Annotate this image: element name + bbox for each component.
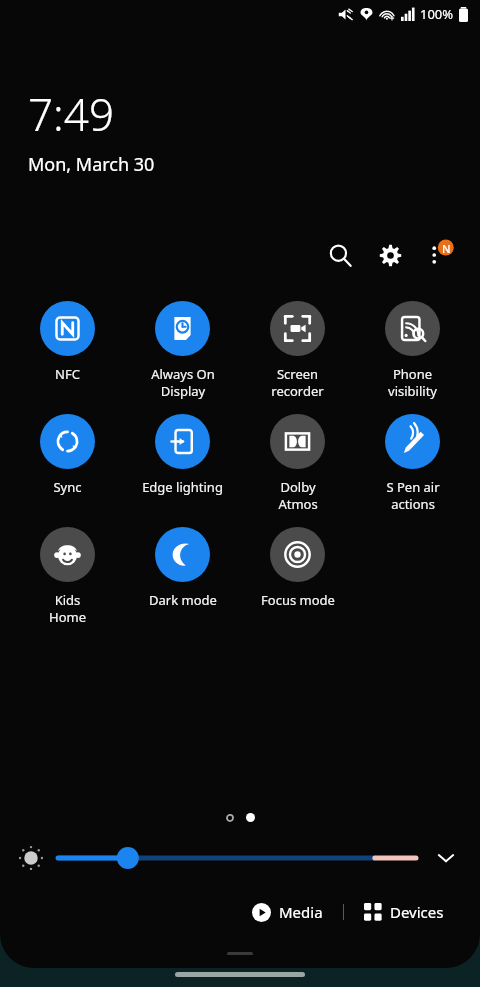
button[interactable]: Dolby Atmos bbox=[240, 414, 355, 513]
staticText: Kids Home bbox=[49, 591, 86, 626]
staticText: Screen recorder bbox=[271, 365, 324, 400]
staticText: Edge lighting bbox=[142, 478, 223, 496]
staticText: 7:49 bbox=[28, 84, 115, 144]
button[interactable]: Brightness bbox=[58, 843, 416, 873]
button[interactable]: Sync bbox=[10, 414, 125, 496]
button[interactable]: Media bbox=[244, 896, 331, 928]
staticText: S Pen air actions bbox=[386, 478, 440, 513]
button[interactable]: Dark mode bbox=[125, 527, 240, 609]
button[interactable]: Kids Home bbox=[10, 527, 125, 626]
staticText: Phone visibility bbox=[388, 365, 437, 400]
staticText: Dark mode bbox=[149, 591, 217, 609]
staticText: Sync bbox=[53, 478, 82, 496]
button[interactable]: Expand brightness settings bbox=[426, 838, 466, 878]
staticText: 100% bbox=[420, 5, 454, 23]
button[interactable]: S Pen air actions bbox=[355, 414, 470, 513]
button[interactable]: Edge lighting bbox=[125, 414, 240, 496]
staticText: Mon, March 30 bbox=[28, 152, 155, 177]
button[interactable]: More options bbox=[416, 231, 464, 279]
button[interactable]: Phone visibility bbox=[355, 301, 470, 400]
button[interactable]: Focus mode bbox=[240, 527, 355, 609]
button[interactable]: Settings bbox=[366, 231, 414, 279]
staticText: N bbox=[442, 241, 451, 256]
button[interactable]: Always On Display bbox=[125, 301, 240, 400]
staticText: Devices bbox=[390, 902, 444, 922]
staticText: Focus mode bbox=[261, 591, 335, 609]
button[interactable]: NFC bbox=[10, 301, 125, 383]
staticText: Dolby Atmos bbox=[278, 478, 318, 513]
button[interactable]: Screen recorder bbox=[240, 301, 355, 400]
button[interactable]: Search bbox=[316, 231, 364, 279]
staticText: NFC bbox=[55, 365, 80, 383]
staticText: Media bbox=[279, 902, 323, 922]
staticText: Always On Display bbox=[151, 365, 215, 400]
button[interactable]: Devices bbox=[356, 896, 452, 928]
